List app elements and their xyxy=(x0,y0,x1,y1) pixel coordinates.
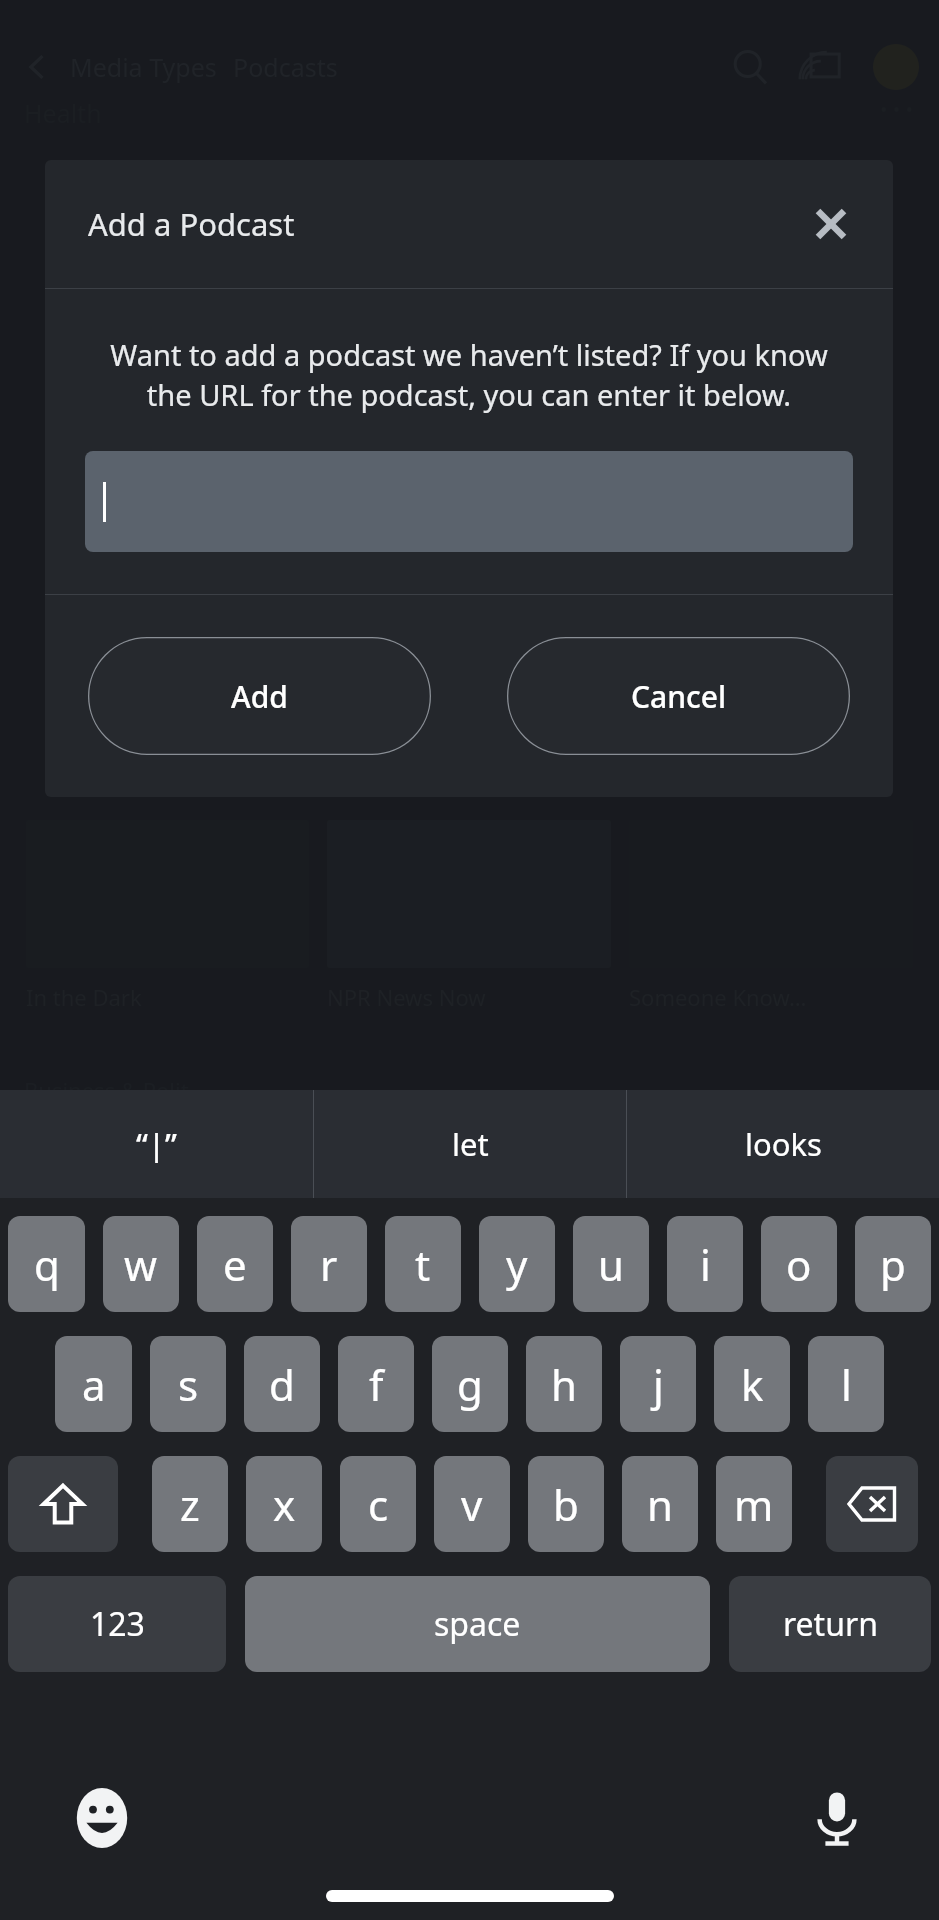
staticText: Want to add a podcast we haven’t listed?… xyxy=(85,335,853,415)
staticText: space xyxy=(434,1602,521,1646)
button[interactable]: t xyxy=(385,1216,461,1312)
button[interactable]: s xyxy=(150,1336,226,1432)
staticText: o xyxy=(786,1236,812,1293)
button[interactable]: z xyxy=(152,1456,228,1552)
staticText: s xyxy=(178,1356,199,1413)
button[interactable]: y xyxy=(479,1216,555,1312)
button[interactable]: let xyxy=(314,1090,626,1198)
staticText: Business & Polit… xyxy=(24,1075,207,1105)
staticText: e xyxy=(223,1236,247,1293)
button[interactable]: Shift xyxy=(8,1456,118,1552)
staticText: return xyxy=(783,1602,878,1646)
button[interactable]: return xyxy=(729,1576,931,1672)
staticText: j xyxy=(653,1356,664,1413)
staticText: f xyxy=(369,1356,384,1413)
staticText: “|” xyxy=(136,1123,177,1165)
button[interactable]: “|” xyxy=(0,1090,313,1198)
button[interactable]: j xyxy=(620,1336,696,1432)
staticText: k xyxy=(741,1356,764,1413)
button[interactable]: Add xyxy=(88,637,431,755)
button[interactable]: Close xyxy=(803,196,859,252)
button[interactable]: m xyxy=(716,1456,792,1552)
button[interactable]: looks xyxy=(627,1090,939,1198)
button[interactable]: i xyxy=(667,1216,743,1312)
staticText: b xyxy=(553,1476,579,1533)
staticText: q xyxy=(34,1236,60,1293)
staticText: let xyxy=(452,1123,489,1165)
button[interactable]: q xyxy=(8,1216,85,1312)
button[interactable]: n xyxy=(622,1456,698,1552)
staticText: c xyxy=(368,1476,389,1533)
button[interactable]: c xyxy=(340,1456,416,1552)
staticText: d xyxy=(269,1356,295,1413)
staticText: u xyxy=(598,1236,624,1293)
staticText: Add xyxy=(231,676,288,717)
staticText: 123 xyxy=(90,1602,145,1646)
button[interactable]: v xyxy=(434,1456,510,1552)
staticText: a xyxy=(82,1356,106,1413)
button[interactable]: Voice input xyxy=(805,1786,869,1850)
button[interactable]: g xyxy=(432,1336,508,1432)
staticText: x xyxy=(273,1476,296,1533)
button[interactable]: h xyxy=(526,1336,602,1432)
button[interactable]: k xyxy=(714,1336,790,1432)
button[interactable]: f xyxy=(338,1336,414,1432)
button[interactable]: b xyxy=(528,1456,604,1552)
staticText: t xyxy=(415,1236,431,1293)
button[interactable]: u xyxy=(573,1216,649,1312)
staticText: g xyxy=(457,1356,483,1413)
staticText: i xyxy=(700,1236,711,1293)
staticText: h xyxy=(551,1356,577,1413)
button[interactable]: a xyxy=(55,1336,132,1432)
button[interactable]: x xyxy=(246,1456,322,1552)
button[interactable]: o xyxy=(761,1216,837,1312)
staticText: n xyxy=(647,1476,673,1533)
button[interactable]: r xyxy=(291,1216,367,1312)
button[interactable]: Emoji xyxy=(70,1786,134,1850)
staticText: z xyxy=(180,1476,200,1533)
staticText: Cancel xyxy=(631,676,727,717)
staticText: y xyxy=(506,1236,528,1293)
button[interactable]: w xyxy=(103,1216,179,1312)
button[interactable]: d xyxy=(244,1336,320,1432)
button[interactable]: e xyxy=(197,1216,273,1312)
button[interactable]: space xyxy=(245,1576,710,1672)
button[interactable]: l xyxy=(808,1336,884,1432)
staticText: Add a Podcast xyxy=(88,203,295,245)
button[interactable]: 123 xyxy=(8,1576,226,1672)
button[interactable]: Backspace xyxy=(826,1456,918,1552)
button[interactable]: Cancel xyxy=(507,637,850,755)
staticText: v xyxy=(461,1476,483,1533)
staticText: w xyxy=(124,1236,158,1293)
staticText: looks xyxy=(745,1123,822,1165)
staticText: l xyxy=(841,1356,852,1413)
staticText: r xyxy=(320,1236,338,1293)
staticText: m xyxy=(734,1476,774,1533)
staticText: p xyxy=(880,1236,906,1293)
button[interactable] xyxy=(85,451,853,552)
button[interactable]: p xyxy=(855,1216,931,1312)
